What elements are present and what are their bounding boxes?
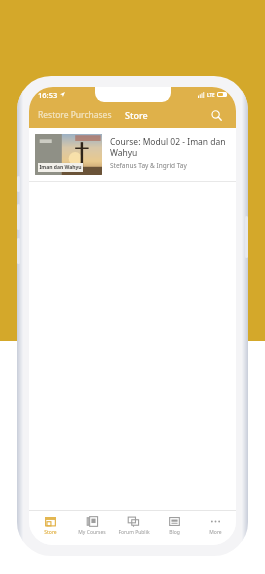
staticText: More: [209, 529, 222, 536]
staticText: Restore Purchases: [38, 109, 112, 121]
button[interactable]: Blog: [154, 511, 195, 545]
staticText: 16:53: [38, 90, 58, 100]
button[interactable]: More: [195, 511, 236, 545]
button[interactable]: Search: [206, 105, 226, 125]
staticText: My Courses: [78, 529, 106, 536]
button[interactable]: Iman dan Wahyu: [29, 128, 236, 181]
staticText: Stefanus Tay & Ingrid Tay: [110, 161, 187, 170]
staticText: Iman dan Wahyu: [39, 164, 82, 171]
staticText: Blog: [169, 529, 180, 536]
staticText: LTE: [207, 92, 215, 98]
staticText: Store: [125, 109, 148, 121]
button[interactable]: Store: [29, 511, 71, 545]
staticText: Store: [44, 529, 57, 536]
button[interactable]: Restore Purchases: [37, 106, 113, 124]
button[interactable]: My Courses: [71, 511, 113, 545]
staticText: Course: Modul 02 - Iman dan Wahyu: [110, 136, 228, 158]
button[interactable]: Forum Publik: [113, 511, 154, 545]
staticText: Forum Publik: [118, 529, 150, 536]
button[interactable]: Store: [124, 106, 149, 124]
